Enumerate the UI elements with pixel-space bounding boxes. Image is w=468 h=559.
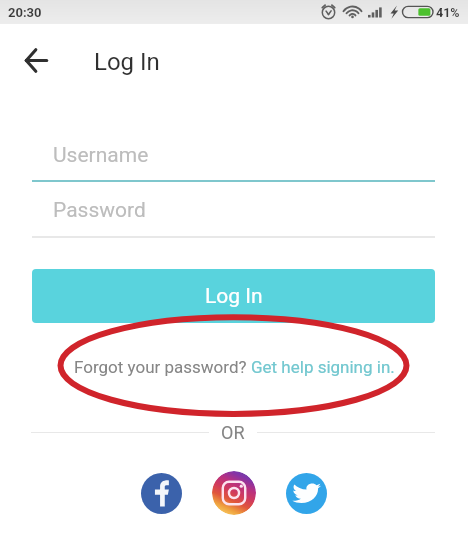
staticText: Username xyxy=(53,143,149,168)
staticText: Log In xyxy=(94,48,160,76)
button[interactable]: Get help signing in. xyxy=(251,357,395,377)
button[interactable]: Sign in with Instagram xyxy=(212,471,256,515)
staticText: 41% xyxy=(436,5,460,20)
staticText: OR xyxy=(221,422,245,443)
button[interactable]: Sign in with Facebook xyxy=(141,473,182,514)
staticText: 20:30 xyxy=(8,5,42,20)
button[interactable]: Log In xyxy=(32,269,435,323)
staticText: Password xyxy=(53,198,146,223)
staticText: Forgot your password? xyxy=(74,357,251,377)
staticText: Log In xyxy=(205,284,263,309)
button[interactable]: Sign in with Twitter xyxy=(286,473,327,514)
button[interactable]: Back xyxy=(14,38,58,82)
